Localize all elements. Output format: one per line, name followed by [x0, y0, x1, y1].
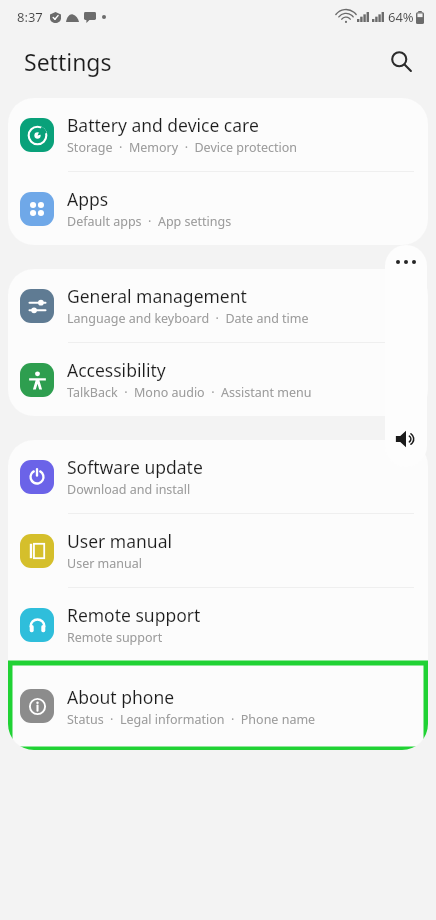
- button[interactable]: About phone: [8, 662, 428, 750]
- button[interactable]: Search: [384, 44, 418, 78]
- staticText: Battery and device care: [67, 113, 259, 137]
- staticText: Remote support: [67, 603, 201, 627]
- button[interactable]: Software update: [8, 440, 428, 513]
- staticText: Settings: [24, 46, 112, 77]
- staticText: User manual: [67, 555, 142, 572]
- button[interactable]: Apps: [8, 172, 428, 245]
- staticText: 64%: [388, 8, 414, 26]
- staticText: 8:37: [17, 8, 43, 26]
- staticText: TalkBack · Mono audio · Assistant menu: [67, 384, 312, 401]
- staticText: Software update: [67, 455, 203, 479]
- staticText: Download and install: [67, 481, 191, 498]
- staticText: Remote support: [67, 629, 163, 646]
- button[interactable]: User manual: [8, 514, 428, 587]
- staticText: Apps: [67, 187, 109, 211]
- staticText: General management: [67, 284, 247, 308]
- button[interactable]: General management: [8, 269, 428, 342]
- staticText: About phone: [67, 685, 175, 709]
- staticText: Status · Legal information · Phone name: [67, 711, 316, 728]
- staticText: Language and keyboard · Date and time: [67, 310, 309, 327]
- button[interactable]: Battery and device care: [8, 98, 428, 171]
- button[interactable]: Volume controls: [385, 245, 427, 467]
- button[interactable]: Accessibility: [8, 343, 428, 416]
- staticText: Storage · Memory · Device protection: [67, 139, 298, 156]
- staticText: Accessibility: [67, 358, 166, 382]
- button[interactable]: Remote support: [8, 588, 428, 661]
- staticText: User manual: [67, 529, 172, 553]
- staticText: Default apps · App settings: [67, 213, 232, 230]
